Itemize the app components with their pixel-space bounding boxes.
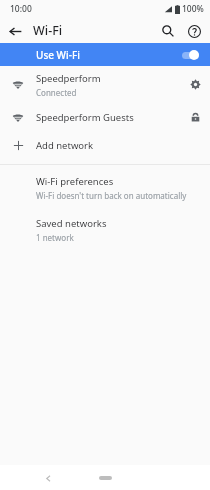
button[interactable]: Network settings — [180, 66, 210, 103]
staticText: Add network — [36, 139, 94, 152]
staticText: Wi-Fi — [33, 22, 63, 39]
staticText: Speedperform — [36, 72, 101, 85]
button[interactable]: Saved networks — [0, 213, 210, 247]
staticText: Speedperform Guests — [36, 111, 134, 124]
staticText: 100% — [182, 3, 204, 15]
staticText: Saved networks — [36, 217, 107, 230]
button[interactable]: Speedperform — [0, 66, 210, 103]
button[interactable]: Speedperform Guests — [0, 103, 210, 132]
staticText: Use Wi-Fi — [36, 48, 80, 62]
button[interactable]: Back — [4, 20, 26, 42]
staticText: Wi-Fi doesn't turn back on automatically — [36, 190, 187, 201]
staticText: Connected — [36, 87, 77, 98]
staticText: Wi-Fi preferences — [36, 175, 114, 188]
button[interactable]: Use Wi-Fi — [0, 43, 210, 66]
staticText: 10:00 — [10, 3, 32, 15]
button[interactable]: Wi-Fi preferences — [0, 171, 210, 205]
button[interactable]: Search — [157, 20, 179, 42]
button[interactable]: Home — [88, 468, 122, 488]
staticText: 1 network — [36, 232, 74, 243]
button[interactable]: Add network — [0, 132, 210, 159]
button[interactable]: Secured network — [180, 103, 210, 132]
button[interactable]: Help — [183, 20, 205, 42]
button[interactable]: Back — [38, 468, 58, 488]
